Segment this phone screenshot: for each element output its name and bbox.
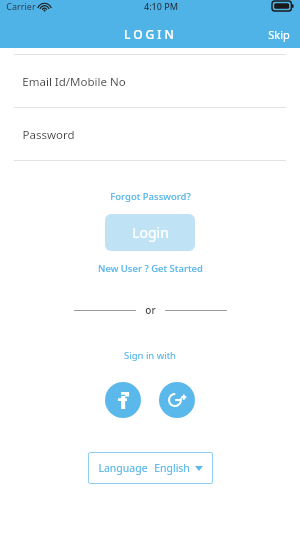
staticText: Carrier — [6, 0, 36, 12]
staticText: LOGIN — [124, 26, 177, 42]
button[interactable]: Language — [88, 452, 213, 484]
staticText: English — [154, 461, 190, 475]
staticText: Language — [98, 461, 148, 475]
button[interactable]: Login — [105, 214, 195, 251]
button[interactable]: LOGIN — [124, 26, 177, 42]
staticText: Email Id/Mobile No — [22, 74, 126, 90]
button[interactable]: Forgot Password? — [102, 188, 199, 205]
staticText: Password — [22, 127, 75, 143]
staticText: Skip — [268, 27, 290, 42]
staticText: 4:10 PM — [144, 0, 178, 12]
staticText: Login — [132, 223, 169, 242]
button[interactable]: Password — [0, 108, 300, 161]
button[interactable]: Email Id/Mobile No — [0, 55, 300, 108]
staticText: Sign in with — [124, 349, 176, 362]
staticText: or — [145, 303, 156, 317]
staticText: New User ? Get Started — [98, 262, 203, 275]
button[interactable]: Skip — [258, 23, 300, 46]
staticText: Forgot Password? — [110, 190, 191, 203]
button[interactable]: Sign in with Facebook — [105, 382, 141, 418]
button[interactable]: New User ? Get Started — [90, 260, 211, 277]
button[interactable]: Sign in with Google — [159, 382, 195, 418]
